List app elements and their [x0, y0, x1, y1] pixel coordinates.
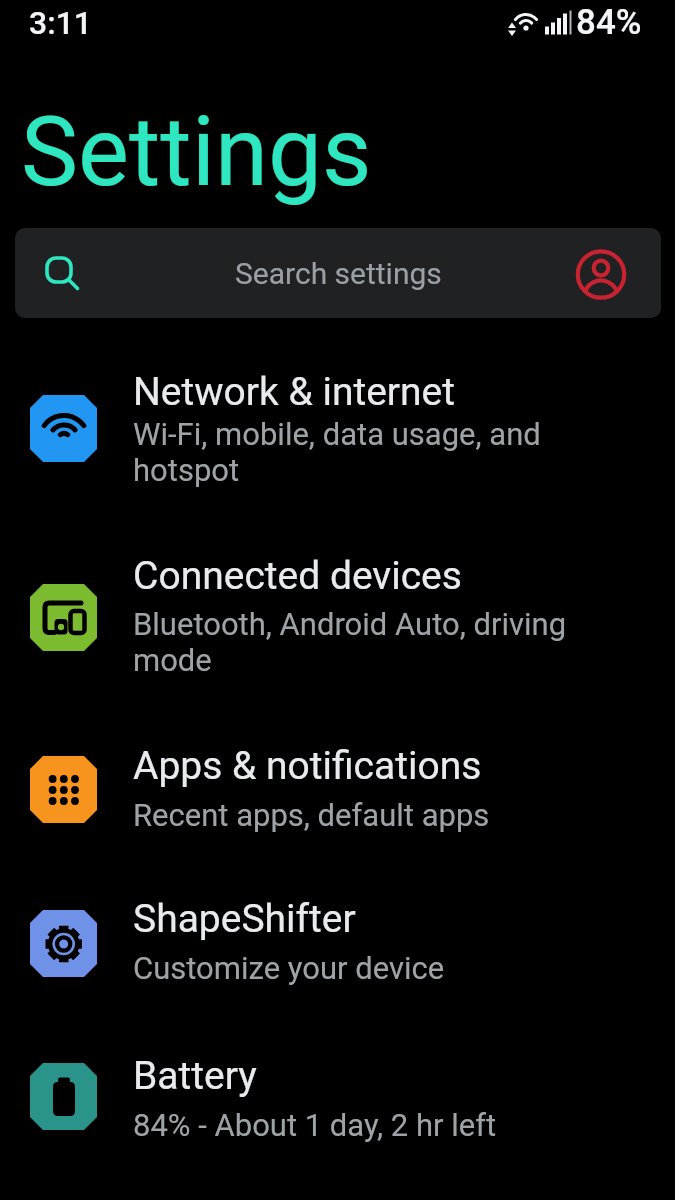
staticText: Wi-Fi, mobile, data usage, and hotspot: [133, 416, 541, 488]
button[interactable]: Network & internet: [0, 336, 675, 526]
staticText: Customize your device: [133, 950, 445, 986]
staticText: Connected devices: [133, 553, 462, 599]
staticText: Search settings: [235, 256, 442, 291]
staticText: Apps & notifications: [133, 743, 482, 789]
staticText: 84% - About 1 day, 2 hr left: [133, 1107, 497, 1143]
staticText: 84%: [576, 2, 642, 43]
staticText: Network & internet: [133, 369, 456, 415]
button[interactable]: ShapeShifter: [0, 868, 675, 1022]
staticText: 3:11: [29, 4, 93, 42]
button[interactable]: Connected devices: [0, 526, 675, 716]
staticText: Settings: [21, 96, 372, 209]
staticText: Recent apps, default apps: [133, 797, 490, 833]
staticText: Bluetooth, Android Auto, driving mode: [133, 606, 567, 678]
staticText: ShapeShifter: [133, 896, 356, 942]
button[interactable]: [573, 246, 629, 302]
button[interactable]: Search settings: [15, 228, 661, 318]
button[interactable]: Battery: [0, 1022, 675, 1176]
staticText: Battery: [133, 1053, 257, 1099]
button[interactable]: Apps & notifications: [0, 716, 675, 868]
